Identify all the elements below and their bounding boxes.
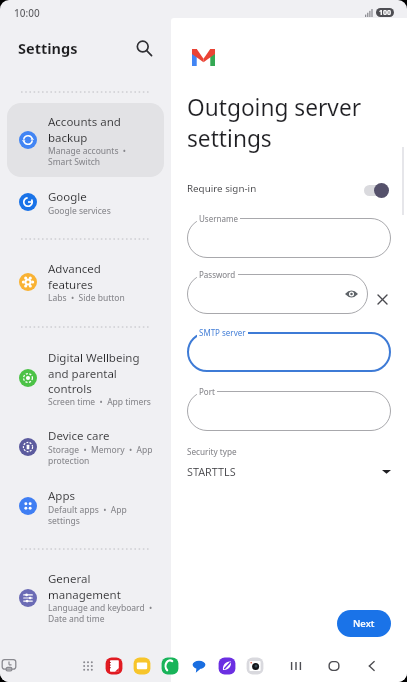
button[interactable]: App [132, 656, 152, 676]
staticText: Require sign-in [187, 182, 257, 195]
button[interactable] [7, 251, 164, 314]
staticText: Google services [48, 205, 111, 217]
staticText: Port [199, 386, 215, 397]
staticText: Accounts and backup [48, 114, 121, 145]
staticText: 10:00 [14, 6, 40, 20]
staticText: Username [199, 213, 238, 224]
staticText: Default apps • App settings [48, 504, 127, 526]
button[interactable] [187, 274, 368, 314]
staticText: Manage accounts • Smart Switch [48, 145, 127, 167]
button[interactable]: Next [337, 610, 391, 637]
button[interactable] [7, 178, 164, 226]
button[interactable] [7, 103, 164, 177]
button[interactable]: App [160, 656, 180, 676]
staticText: Digital Wellbeing and parental controls [48, 350, 140, 396]
staticText: SMTP server [199, 327, 246, 338]
button[interactable] [7, 477, 164, 536]
staticText: Password [199, 269, 236, 280]
button[interactable]: Apps [82, 660, 94, 672]
staticText: STARTTLS [187, 464, 236, 479]
staticText: Outgoing server settings [187, 92, 362, 153]
staticText: Apps [48, 488, 76, 504]
button[interactable] [7, 561, 164, 635]
staticText: Language and keyboard • Date and time [48, 602, 153, 624]
staticText: General management [48, 571, 121, 602]
button[interactable]: App [245, 656, 265, 676]
button[interactable]: Recents [1, 658, 18, 675]
staticText: Screen time • App timers [48, 396, 151, 408]
button[interactable]: Search [131, 35, 157, 61]
staticText: Google [48, 189, 87, 205]
button[interactable]: App [217, 656, 237, 676]
staticText: Labs • Side button [48, 292, 125, 304]
staticText: Next [353, 617, 375, 630]
button[interactable]: STARTTLS [187, 460, 391, 482]
button[interactable]: Require sign-in [364, 182, 390, 198]
staticText: Settings [18, 38, 78, 58]
staticText: Storage • Memory • App protection [48, 444, 153, 466]
staticText: Advanced features [48, 261, 101, 292]
button[interactable] [7, 418, 164, 477]
button[interactable] [187, 332, 391, 372]
button[interactable]: Recent apps [285, 655, 307, 677]
button[interactable]: Home [323, 655, 345, 677]
button[interactable] [7, 339, 164, 417]
staticText: Device care [48, 428, 110, 444]
button[interactable]: App [189, 656, 209, 676]
button[interactable]: App [104, 656, 124, 676]
button[interactable] [187, 391, 391, 431]
button[interactable]: Back [361, 655, 383, 677]
staticText: 100 [379, 8, 392, 17]
button[interactable]: Show password [343, 286, 359, 302]
button[interactable]: Clear password [374, 291, 390, 307]
staticText: Security type [187, 446, 237, 457]
button[interactable] [187, 218, 391, 258]
